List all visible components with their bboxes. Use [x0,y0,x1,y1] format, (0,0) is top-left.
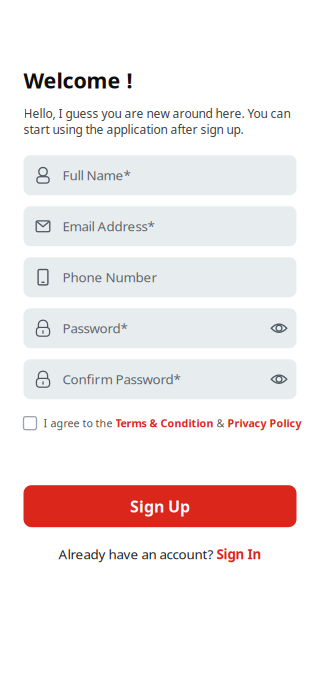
staticText: Privacy Policy [227,416,301,430]
button[interactable]: Show password [270,359,287,399]
staticText: Full Name* [62,166,130,184]
button[interactable]: Show password [270,308,287,348]
staticText: Terms & Condition [115,416,213,430]
staticText: Confirm Password* [62,370,180,388]
staticText: & [213,416,227,430]
staticText: Phone Number [62,268,157,286]
staticText: I agree to the [43,416,115,430]
button[interactable]: Already have an account? [23,545,296,563]
button[interactable]: Sign Up [23,485,296,527]
staticText: Sign In [216,545,261,563]
staticText: Sign Up [130,496,190,517]
staticText: Hello, I guess you are new around here. … [23,105,290,137]
button[interactable]: I agree to the [23,414,301,432]
staticText: Email Address* [62,217,154,235]
staticText: Password* [62,319,127,337]
staticText: Welcome ! [23,66,132,94]
staticText: Already have an account? [58,545,216,563]
